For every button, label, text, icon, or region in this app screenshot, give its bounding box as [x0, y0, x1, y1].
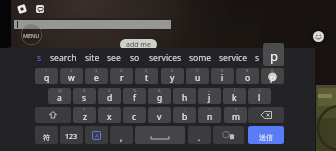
staticText: 4: [120, 68, 123, 73]
button[interactable]: ": [98, 107, 121, 123]
staticText: site: [85, 52, 100, 64]
staticText: z: [83, 111, 87, 123]
staticText: add me: [126, 40, 151, 50]
staticText: w: [68, 72, 75, 84]
button[interactable]: 9: [236, 68, 259, 84]
staticText: p: [270, 47, 278, 65]
staticText: h: [182, 92, 188, 104]
button[interactable]: Roblox: [17, 4, 27, 14]
staticText: s: [255, 52, 260, 64]
button[interactable]: 123: [60, 126, 83, 144]
staticText: .: [198, 132, 201, 143]
button[interactable]: -: [173, 88, 196, 104]
staticText: $: [108, 88, 111, 93]
button[interactable]: %: [123, 88, 146, 104]
staticText: p: [270, 72, 276, 84]
staticText: *: [83, 107, 86, 112]
button[interactable]: 8: [211, 68, 234, 84]
button[interactable]: *: [73, 107, 96, 123]
staticText: !: [209, 107, 211, 112]
button[interactable]: ): [248, 88, 271, 104]
button[interactable]: 0: [261, 68, 284, 84]
button[interactable]: 1: [35, 68, 58, 84]
button[interactable]: A: [85, 126, 108, 144]
button[interactable]: 4: [110, 68, 133, 84]
button[interactable]: services: [149, 51, 182, 65]
staticText: @: [58, 88, 62, 93]
button[interactable]: 6: [161, 68, 184, 84]
button[interactable]: 3: [85, 68, 108, 84]
button[interactable]: Emoji: [308, 26, 328, 46]
staticText: ": [109, 107, 111, 112]
staticText: services: [149, 52, 182, 64]
button[interactable]: [135, 126, 185, 144]
staticText: m: [232, 111, 240, 123]
staticText: b: [182, 111, 188, 123]
staticText: j: [208, 92, 211, 104]
button[interactable]: ': [123, 107, 146, 123]
button[interactable]: ;: [173, 107, 196, 123]
staticText: ?: [235, 107, 237, 112]
staticText: search: [50, 52, 77, 64]
staticText: 2: [70, 68, 73, 73]
staticText: 5: [145, 68, 148, 73]
staticText: %: [133, 88, 137, 93]
staticText: &: [158, 88, 161, 93]
button[interactable]: s: [37, 51, 42, 65]
button[interactable]: $: [98, 88, 121, 104]
button[interactable]: 5: [135, 68, 158, 84]
staticText: ,: [120, 132, 123, 143]
button[interactable]: (: [223, 88, 246, 104]
button[interactable]: Chat: [36, 5, 44, 13]
button[interactable]: add me: [120, 39, 157, 50]
staticText: 送信: [259, 133, 273, 142]
staticText: o: [245, 72, 251, 84]
staticText: MENU: [23, 32, 40, 39]
staticText: +: [208, 88, 211, 93]
button[interactable]: so: [130, 51, 140, 65]
staticText: d: [107, 92, 113, 104]
staticText: 1: [45, 68, 48, 73]
button[interactable]: 送信: [248, 126, 284, 144]
staticText: 7: [196, 68, 199, 73]
button[interactable]: @: [48, 88, 71, 104]
button[interactable]: service: [219, 51, 248, 65]
button[interactable]: 符: [35, 126, 58, 144]
staticText: f: [133, 92, 136, 104]
button[interactable]: :: [148, 107, 171, 123]
button[interactable]: see: [107, 51, 121, 65]
staticText: u: [195, 72, 201, 84]
button[interactable]: ?: [224, 107, 247, 123]
button[interactable]: #: [73, 88, 96, 104]
button[interactable]: search: [50, 51, 77, 65]
button[interactable]: [35, 107, 71, 123]
button[interactable]: [248, 107, 284, 123]
button[interactable]: site: [85, 51, 100, 65]
button[interactable]: .: [188, 126, 211, 144]
staticText: a: [57, 92, 62, 104]
staticText: 9: [246, 68, 249, 73]
button[interactable]: [213, 126, 244, 144]
button[interactable]: [11, 18, 172, 30]
button[interactable]: 2: [60, 68, 83, 84]
button[interactable]: ,: [110, 126, 133, 144]
button[interactable]: some: [189, 51, 212, 65]
staticText: 123: [65, 132, 78, 142]
button[interactable]: +: [198, 88, 221, 104]
button[interactable]: 7: [186, 68, 209, 84]
staticText: 3: [95, 68, 98, 73]
staticText: 0: [271, 68, 274, 73]
staticText: g: [157, 92, 163, 104]
button[interactable]: MENU: [21, 24, 42, 45]
staticText: ': [134, 107, 135, 112]
staticText: c: [132, 111, 137, 123]
staticText: s: [37, 52, 42, 64]
button[interactable]: !: [198, 107, 221, 123]
staticText: (: [234, 88, 236, 93]
button[interactable]: &: [148, 88, 171, 104]
button[interactable]: s: [255, 51, 260, 65]
staticText: so: [130, 52, 140, 64]
staticText: 符: [43, 133, 50, 142]
staticText: t: [145, 72, 149, 84]
staticText: 8: [221, 68, 224, 73]
